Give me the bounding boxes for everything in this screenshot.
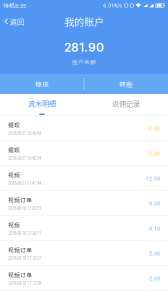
staticText: 返佣记录	[112, 98, 140, 109]
button[interactable]: 流水明细	[0, 94, 84, 116]
staticText: -2.00	[148, 150, 160, 157]
staticText: -2.00	[148, 250, 160, 257]
staticText: 视频	[8, 171, 20, 179]
button[interactable]: 返回	[0, 11, 30, 32]
button[interactable]: 提现	[0, 74, 84, 94]
staticText: 提现	[8, 146, 20, 154]
staticText: 2018-08-18 17:20:11	[8, 231, 41, 236]
staticText: 视频订单	[8, 196, 32, 204]
staticText: -2.00	[148, 275, 160, 282]
button[interactable]: 提现	[0, 116, 168, 141]
staticText: 待机6:05	[3, 1, 26, 10]
staticText: 视频	[8, 221, 20, 229]
staticText: -0.10	[148, 225, 160, 232]
staticText: 我的账户	[64, 14, 104, 29]
staticText: 视频订单	[8, 246, 32, 254]
button[interactable]: 返佣记录	[84, 94, 168, 116]
button[interactable]: 视频订单	[0, 241, 168, 266]
button[interactable]: 视频	[0, 166, 168, 191]
staticText: 2018-08-18 17:13:27	[8, 256, 41, 261]
staticText: 281.90	[64, 40, 104, 55]
staticText: 6.01K/s	[103, 2, 122, 9]
staticText: -2.00	[148, 125, 160, 132]
button[interactable]: 视频	[0, 216, 168, 241]
staticText: 提现	[8, 121, 20, 129]
staticText: 视频订单	[8, 271, 32, 279]
button[interactable]: 视频订单	[0, 266, 168, 291]
staticText: 2018-08-18 17:12:38	[8, 281, 41, 286]
staticText: -0.00	[148, 200, 160, 207]
staticText: 2018-08-27 16:40:43	[8, 131, 41, 136]
staticText: 转账	[119, 79, 133, 89]
button[interactable]: 转账	[84, 74, 168, 94]
button[interactable]: 提现	[0, 141, 168, 166]
staticText: 流水明细	[28, 98, 56, 109]
staticText: 2018-08-18 17:20:31	[8, 206, 41, 211]
staticText: 账户余额	[72, 58, 96, 66]
staticText: 提现	[35, 79, 49, 89]
staticText: 2018-08-27 16:40:34	[8, 156, 41, 161]
staticText: 2018-08-21 11:41:44	[8, 181, 41, 186]
button[interactable]: 视频订单	[0, 191, 168, 216]
staticText: -12.00	[145, 175, 160, 182]
staticText: 返回	[10, 16, 24, 27]
